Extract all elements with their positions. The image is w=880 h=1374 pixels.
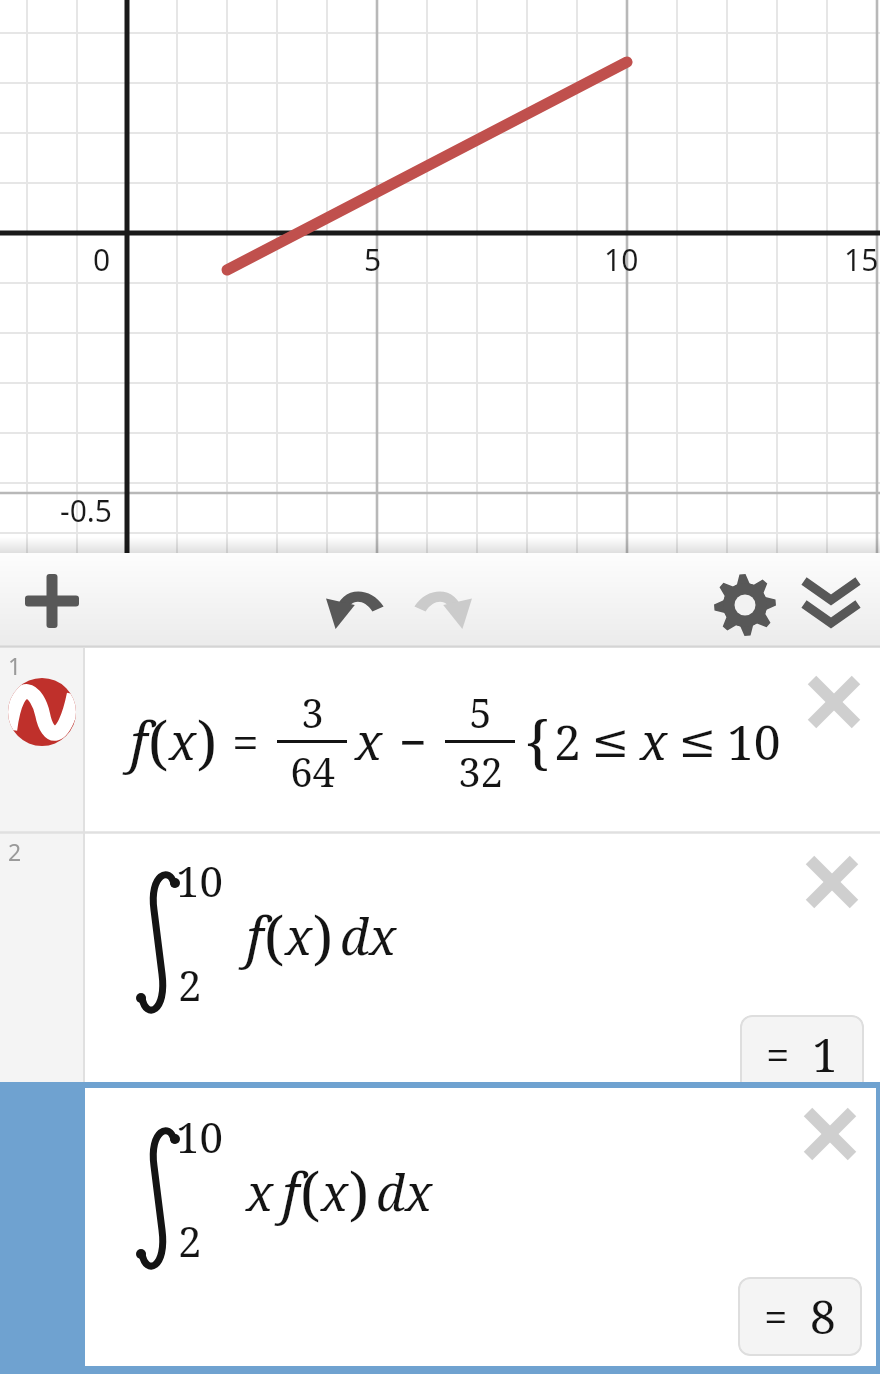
button[interactable]: Add expression	[12, 561, 92, 641]
staticText: f	[282, 1155, 300, 1229]
staticText: =	[766, 1026, 790, 1083]
staticText: x	[169, 707, 197, 775]
staticText: 2	[178, 956, 202, 1013]
staticText: −	[399, 709, 427, 774]
staticText: =	[232, 709, 259, 774]
staticText: 1	[812, 1023, 838, 1086]
button[interactable]: =	[738, 1277, 862, 1356]
staticText: 3	[301, 685, 324, 739]
staticText: 10	[604, 239, 639, 280]
staticText: 10	[176, 1108, 223, 1165]
staticText: 10	[176, 852, 223, 909]
staticText: )	[349, 1153, 370, 1232]
staticText: 64	[290, 744, 335, 798]
staticText: x	[285, 902, 313, 970]
staticText: ≤	[591, 714, 630, 768]
staticText: x	[369, 902, 397, 970]
staticText: -0.5	[60, 490, 113, 531]
button[interactable]: Undo	[318, 565, 398, 645]
staticText: )	[313, 897, 334, 976]
button[interactable]: 1	[0, 648, 880, 834]
staticText: f	[246, 899, 264, 973]
staticText: 15	[844, 239, 879, 280]
staticText: f	[130, 704, 148, 778]
staticText: (	[264, 897, 285, 976]
staticText: 32	[458, 744, 503, 798]
staticText: 2	[8, 836, 22, 867]
button[interactable]: Delete expression	[788, 1092, 872, 1176]
staticText: )	[197, 702, 218, 781]
staticText: 0	[93, 239, 111, 280]
staticText: 10	[727, 709, 781, 774]
button[interactable]: 2	[0, 834, 880, 1082]
button[interactable]: =	[740, 1015, 864, 1094]
staticText: ≤	[678, 714, 717, 768]
staticText: (	[148, 702, 169, 781]
staticText: d	[340, 902, 369, 970]
staticText: 5	[469, 685, 492, 739]
staticText: {	[525, 702, 550, 781]
staticText: x	[246, 1158, 274, 1226]
staticText: x	[640, 707, 668, 775]
button[interactable]: Delete expression	[792, 660, 876, 744]
staticText: 8	[810, 1285, 836, 1348]
staticText: =	[764, 1288, 788, 1345]
button[interactable]: Settings	[705, 565, 785, 645]
staticText: 5	[364, 239, 382, 280]
staticText: x	[405, 1158, 433, 1226]
button[interactable]: 10	[0, 1082, 880, 1374]
staticText: d	[376, 1158, 405, 1226]
button[interactable]: Redo	[400, 565, 480, 645]
staticText: x	[321, 1158, 349, 1226]
staticText: x	[355, 707, 383, 775]
button[interactable]: Collapse panel	[791, 565, 871, 645]
staticText: 2	[554, 709, 581, 774]
button[interactable]: Delete expression	[790, 840, 874, 924]
staticText: (	[300, 1153, 321, 1232]
staticText: 2	[178, 1212, 202, 1269]
staticText: 1	[8, 650, 22, 681]
